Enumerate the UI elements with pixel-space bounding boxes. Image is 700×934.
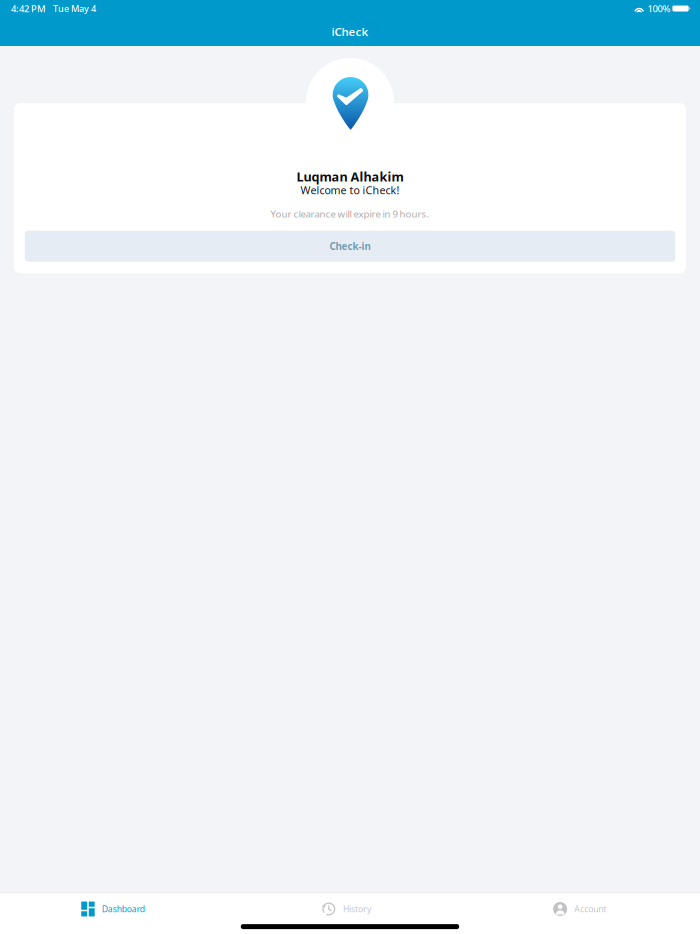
staticText: 4:42 PM	[11, 2, 46, 15]
staticText: History	[343, 903, 371, 915]
staticText: Luqman Alhakim	[296, 168, 403, 185]
staticText: 100%	[648, 2, 671, 15]
staticText: Your clearance will expire in 9 hours.	[270, 207, 429, 220]
staticText: iCheck	[331, 24, 368, 39]
button[interactable]: History	[233, 893, 467, 925]
staticText: Dashboard	[102, 903, 145, 915]
staticText: Account	[574, 903, 606, 915]
button[interactable]: Dashboard	[0, 893, 233, 925]
button[interactable]: Check-in	[25, 231, 675, 262]
staticText: Tue May 4	[53, 2, 96, 15]
staticText: Welcome to iCheck!	[300, 183, 399, 197]
button[interactable]: Account	[467, 893, 700, 925]
staticText: Check-in	[329, 239, 370, 253]
